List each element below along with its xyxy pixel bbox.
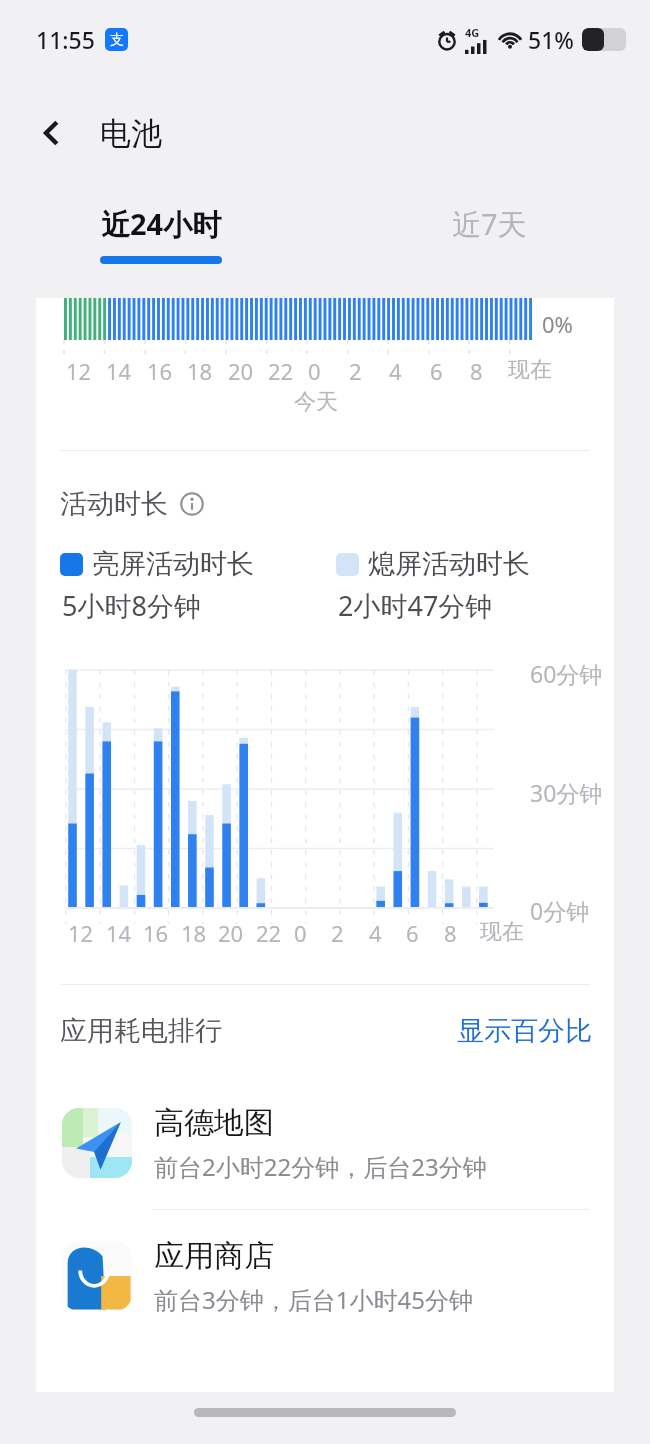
staticText: 支 (110, 31, 124, 49)
staticText: 20 (218, 918, 244, 948)
staticText: 今天 (294, 388, 338, 416)
staticText: 现在 (480, 918, 524, 946)
button[interactable]: 应用商店 (36, 1210, 614, 1342)
staticText: 5小时8分钟 (62, 587, 201, 624)
staticText: 20 (228, 356, 254, 386)
button[interactable]: 近7天 (408, 188, 570, 284)
staticText: 30分钟 (530, 777, 603, 808)
button[interactable]: 显示百分比 (447, 1006, 602, 1056)
button[interactable]: 高德地图 (36, 1077, 614, 1209)
staticText: 22 (256, 918, 282, 948)
staticText: 0% (542, 309, 573, 339)
button[interactable]: Info (178, 490, 206, 518)
staticText: 6 (430, 356, 443, 386)
staticText: 0 (308, 356, 321, 386)
staticText: 8 (444, 918, 457, 948)
staticText: 2 (331, 918, 344, 948)
staticText: 活动时长 (60, 487, 168, 521)
staticText: 60分钟 (530, 658, 603, 689)
staticText: 6 (406, 918, 419, 948)
staticText: 51% (528, 24, 574, 55)
staticText: 8 (470, 356, 483, 386)
staticText: 应用耗电排行 (60, 1014, 222, 1048)
staticText: 22 (268, 356, 294, 386)
staticText: 16 (147, 356, 173, 386)
button[interactable]: 近24小时 (80, 188, 242, 284)
staticText: 11:55 (36, 24, 95, 55)
staticText: 0分钟 (530, 895, 590, 926)
staticText: 12 (68, 918, 94, 948)
staticText: 熄屏活动时长 (368, 547, 530, 581)
staticText: 0 (294, 918, 307, 948)
staticText: 显示百分比 (457, 1014, 592, 1048)
staticText: 18 (187, 356, 213, 386)
staticText: 4 (389, 356, 402, 386)
staticText: 近24小时 (101, 204, 222, 244)
staticText: 16 (143, 918, 169, 948)
staticText: 亮屏活动时长 (92, 547, 254, 581)
staticText: 现在 (508, 356, 552, 384)
staticText: 12 (66, 356, 92, 386)
staticText: 4 (369, 918, 382, 948)
staticText: 高德地图 (154, 1104, 274, 1142)
staticText: 14 (106, 918, 132, 948)
staticText: 前台3分钟，后台1小时45分钟 (154, 1283, 473, 1316)
staticText: 前台2小时22分钟，后台23分钟 (154, 1150, 487, 1183)
staticText: 应用商店 (154, 1237, 274, 1275)
staticText: 2 (349, 356, 362, 386)
staticText: 近7天 (452, 204, 527, 244)
staticText: 18 (181, 918, 207, 948)
button[interactable]: Back (24, 105, 80, 161)
staticText: 2小时47分钟 (338, 587, 493, 624)
staticText: 电池 (100, 114, 162, 153)
staticText: 14 (106, 356, 132, 386)
staticText: 4G (465, 25, 480, 40)
